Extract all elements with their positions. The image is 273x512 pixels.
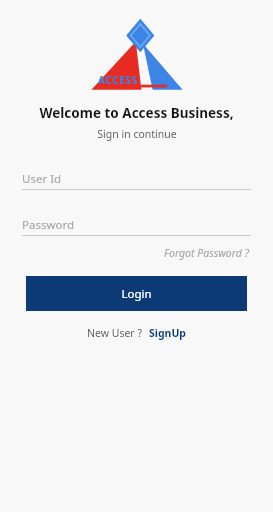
staticText: Forgot Password ?: [164, 246, 249, 260]
staticText: Login: [121, 286, 152, 302]
button[interactable]: Password: [22, 215, 251, 236]
button[interactable]: Login: [26, 276, 247, 311]
staticText: Password: [22, 217, 75, 233]
staticText: Welcome to Access Business,: [39, 104, 234, 122]
staticText: ACCESS: [98, 73, 138, 87]
button[interactable]: Forgot Password ?: [162, 244, 251, 262]
button[interactable]: SignUp: [148, 324, 187, 342]
other: Access Business logo: [90, 18, 184, 96]
button[interactable]: User Id: [22, 169, 251, 190]
staticText: Sign in continue: [97, 127, 177, 141]
staticText: User Id: [22, 171, 62, 187]
staticText: SignUp: [149, 326, 186, 340]
staticText: New User ?: [87, 326, 142, 340]
